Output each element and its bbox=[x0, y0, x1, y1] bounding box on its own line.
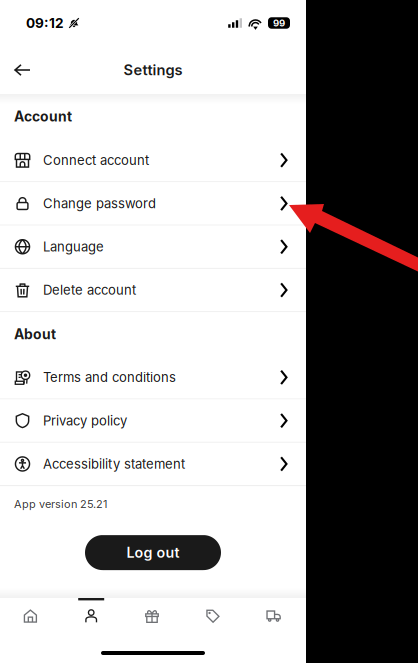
staticText: Change password bbox=[43, 195, 156, 211]
staticText: 09:12 bbox=[26, 15, 64, 31]
staticText: Settings bbox=[123, 61, 182, 79]
button[interactable]: Accessibility statement bbox=[0, 443, 306, 486]
button[interactable]: Delivery bbox=[243, 598, 304, 634]
staticText: App version 25.21 bbox=[14, 497, 107, 511]
button[interactable]: Offers bbox=[182, 598, 243, 634]
staticText: Connect account bbox=[43, 152, 149, 168]
button[interactable]: Delete account bbox=[0, 269, 306, 312]
button[interactable]: Privacy policy bbox=[0, 399, 306, 443]
button[interactable]: Account bbox=[61, 598, 122, 634]
button[interactable]: Rewards bbox=[122, 598, 182, 634]
staticText: About bbox=[14, 326, 56, 343]
staticText: Terms and conditions bbox=[43, 369, 176, 385]
button[interactable]: Terms and conditions bbox=[0, 356, 306, 399]
staticText: Account bbox=[14, 108, 72, 125]
button[interactable]: Back bbox=[7, 55, 38, 84]
staticText: Log out bbox=[126, 544, 179, 561]
button[interactable]: Log out bbox=[85, 535, 221, 570]
button[interactable]: Connect account bbox=[0, 139, 306, 182]
staticText: 99 bbox=[273, 17, 285, 29]
staticText: Privacy policy bbox=[43, 413, 127, 428]
button[interactable]: Change password bbox=[0, 182, 306, 226]
button[interactable]: Home bbox=[0, 598, 61, 634]
staticText: Delete account bbox=[43, 282, 136, 298]
staticText: Accessibility statement bbox=[43, 456, 185, 472]
button[interactable]: Language bbox=[0, 226, 306, 269]
staticText: Language bbox=[43, 239, 104, 255]
